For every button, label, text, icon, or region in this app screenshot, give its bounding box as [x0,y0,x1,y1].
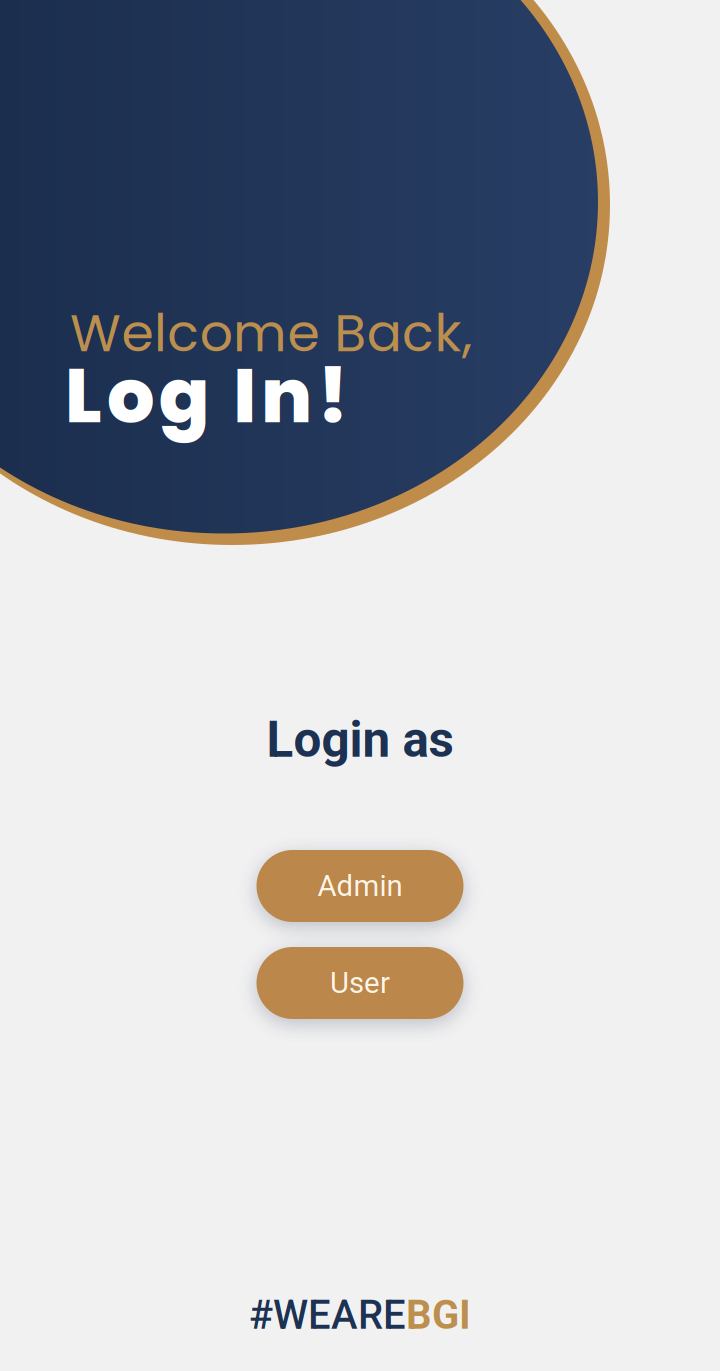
staticText: User [330,966,390,1000]
staticText: Log In! [65,344,349,448]
staticText: BGI [406,1292,471,1338]
button[interactable]: Admin [256,850,463,922]
staticText: Welcome Back, [70,297,472,369]
button[interactable]: User [256,947,463,1019]
staticText: Admin [317,869,402,903]
staticText: #WEARE [249,1292,406,1338]
staticText: Login as [266,711,453,769]
